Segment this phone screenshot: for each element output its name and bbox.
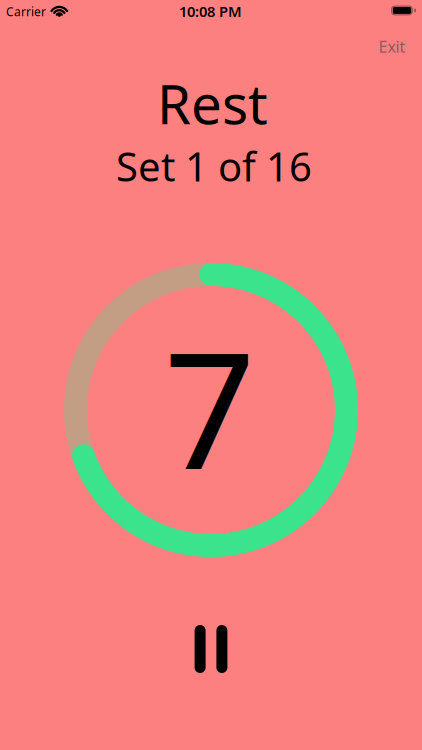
staticText: 10:08 PM [179,2,242,21]
button[interactable]: Exit [378,36,405,57]
staticText: Carrier [6,3,46,19]
staticText: Rest [157,67,268,139]
staticText: Exit [378,36,405,57]
staticText: Set 1 of 16 [116,139,312,192]
button[interactable]: Pause [195,625,227,673]
staticText: 7 [163,299,255,513]
